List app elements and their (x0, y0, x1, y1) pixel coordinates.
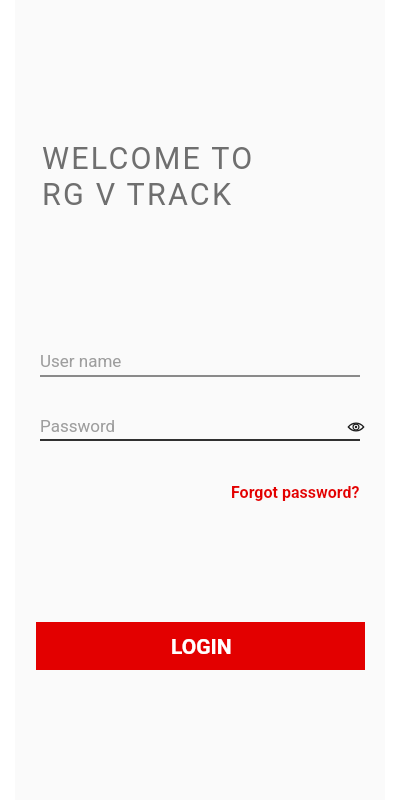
staticText: Forgot password? (231, 483, 360, 502)
button[interactable]: User name (40, 344, 360, 377)
staticText: LOGIN (171, 635, 232, 660)
button[interactable]: LOGIN (36, 622, 365, 670)
staticText: RG V TRACK (42, 177, 234, 213)
staticText: User name (40, 351, 122, 371)
staticText: WELCOME TO (42, 141, 255, 177)
staticText: Password (40, 416, 116, 436)
button[interactable]: Forgot password? (231, 480, 360, 504)
button[interactable]: Password (40, 409, 360, 442)
button[interactable]: Show password (343, 414, 369, 440)
